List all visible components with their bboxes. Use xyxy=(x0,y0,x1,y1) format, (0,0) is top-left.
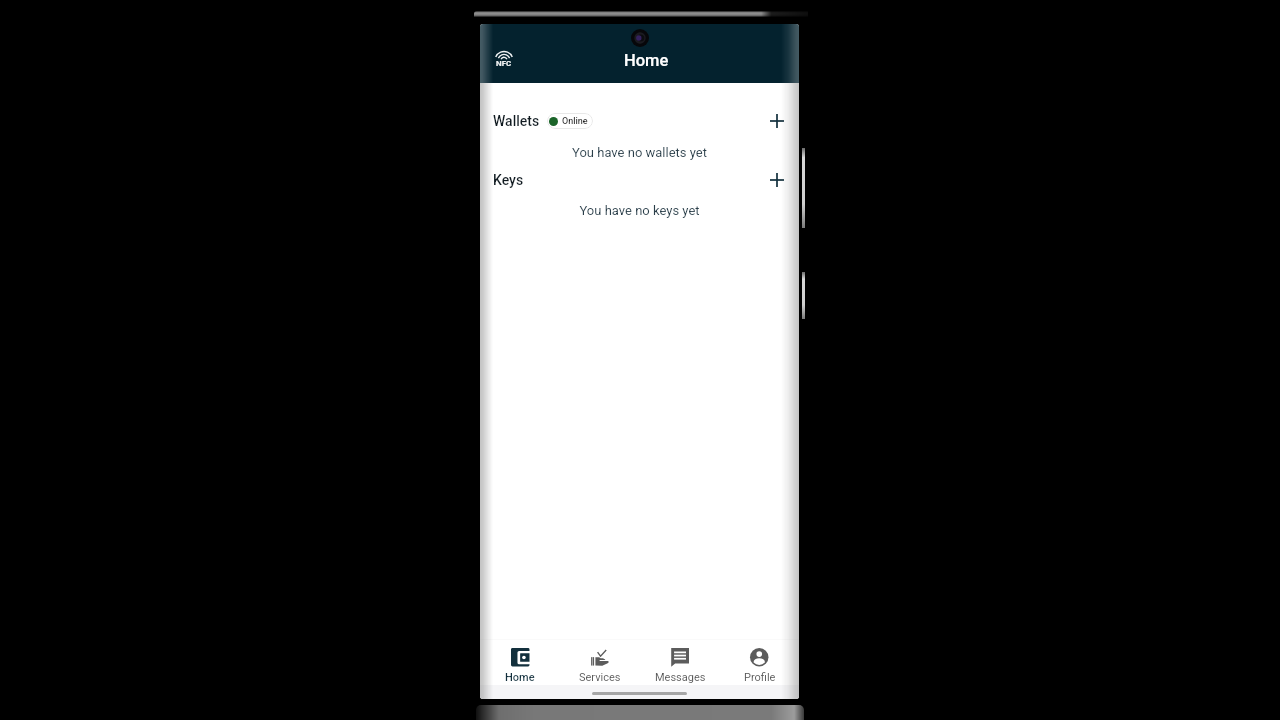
staticText: Wallets xyxy=(493,113,540,129)
staticText: You have no wallets yet xyxy=(480,145,799,160)
button[interactable]: Messages xyxy=(640,648,720,685)
staticText: Home xyxy=(624,51,669,70)
staticText: Keys xyxy=(493,172,524,188)
staticText: NFC xyxy=(496,59,512,68)
staticText: You have no keys yet xyxy=(480,203,799,218)
staticText: Online xyxy=(562,116,588,127)
button[interactable]: Add Wallets xyxy=(765,110,789,132)
staticText: Messages xyxy=(655,671,706,684)
button[interactable]: Online xyxy=(547,113,593,129)
button[interactable]: Services xyxy=(560,648,640,685)
staticText: Profile xyxy=(744,671,776,684)
button[interactable]: Profile xyxy=(720,648,799,685)
staticText: Home xyxy=(505,671,535,684)
staticText: Services xyxy=(579,671,621,684)
button[interactable]: Home xyxy=(480,648,560,685)
button[interactable]: NFC xyxy=(489,42,519,72)
button[interactable]: Add Keys xyxy=(765,169,789,191)
